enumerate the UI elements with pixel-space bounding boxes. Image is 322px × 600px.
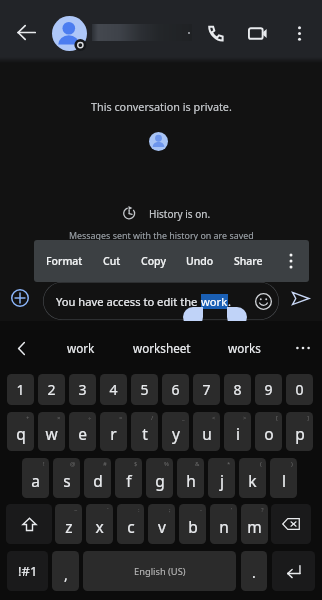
button[interactable]: i xyxy=(224,412,251,451)
staticText: work xyxy=(67,340,95,356)
button[interactable]: Send xyxy=(286,284,315,313)
staticText: 1 xyxy=(16,380,25,399)
staticText: ? xyxy=(261,506,264,514)
button[interactable]: e xyxy=(69,412,96,451)
button[interactable]: 8 xyxy=(224,374,251,405)
button[interactable]: works xyxy=(203,333,285,363)
button[interactable]: p xyxy=(286,412,313,451)
button[interactable]: 5 xyxy=(131,374,158,405)
button[interactable]: You have access to edit the xyxy=(43,282,279,320)
button[interactable]: k xyxy=(239,458,266,498)
button[interactable]: h xyxy=(177,458,204,498)
staticText: x xyxy=(95,516,104,537)
staticText: Copy xyxy=(141,254,166,268)
button[interactable]: More suggestions xyxy=(288,333,318,363)
button[interactable]: a xyxy=(22,458,49,498)
button[interactable]: 6 xyxy=(162,374,189,405)
button[interactable]: d xyxy=(84,458,111,498)
button[interactable]: worksheet xyxy=(121,333,203,363)
button[interactable]: f xyxy=(115,458,142,498)
staticText: 2 xyxy=(47,380,56,399)
button[interactable]: x xyxy=(86,504,113,544)
staticText: w xyxy=(45,423,58,444)
button[interactable]: 0 xyxy=(286,374,313,405)
staticText: r xyxy=(110,423,117,444)
staticText: k xyxy=(248,470,257,491)
button[interactable]: o xyxy=(255,412,282,451)
staticText: Format xyxy=(46,254,83,268)
button[interactable]: 7 xyxy=(193,374,220,405)
button[interactable]: Enter xyxy=(272,551,315,591)
button[interactable]: Share xyxy=(234,240,263,282)
button[interactable]: Cut xyxy=(103,240,121,282)
button[interactable]: Backspace xyxy=(271,504,311,544)
button[interactable]: work xyxy=(40,333,121,363)
button[interactable]: y xyxy=(162,412,189,451)
staticText: < xyxy=(212,414,216,422)
button[interactable]: Shift xyxy=(6,504,52,544)
button[interactable]: More xyxy=(273,240,309,282)
button[interactable]: s xyxy=(53,458,80,498)
button[interactable]: r xyxy=(100,412,127,451)
staticText: ` xyxy=(107,506,109,514)
button[interactable]: More options xyxy=(283,17,316,50)
button[interactable]: Conversation name xyxy=(92,22,192,43)
button[interactable]: z xyxy=(55,504,82,544)
staticText: History is on. xyxy=(149,207,211,221)
button[interactable]: c xyxy=(117,504,144,544)
staticText: d xyxy=(93,470,103,491)
button[interactable]: Back xyxy=(9,15,43,49)
staticText: Undo xyxy=(186,254,214,268)
button[interactable]: 9 xyxy=(255,374,282,405)
button[interactable]: w xyxy=(38,412,65,451)
button[interactable]: v xyxy=(148,504,175,544)
staticText: - xyxy=(200,506,202,514)
button[interactable]: q xyxy=(7,412,34,451)
button[interactable]: g xyxy=(146,458,173,498)
button[interactable]: Copy xyxy=(141,240,166,282)
button[interactable]: Undo xyxy=(186,240,214,282)
button[interactable]: j xyxy=(208,458,235,498)
button[interactable]: Video call xyxy=(240,16,275,51)
button[interactable]: Previous suggestions xyxy=(6,333,36,363)
staticText: e xyxy=(78,423,87,444)
staticText: o xyxy=(264,423,274,444)
button[interactable]: Format xyxy=(46,240,83,282)
staticText: ÷ xyxy=(88,414,92,422)
staticText: Messages sent with the history on are sa… xyxy=(69,229,254,241)
staticText: . xyxy=(228,294,231,309)
button[interactable]: Call xyxy=(198,16,232,50)
button[interactable]: Add attachment xyxy=(7,285,33,311)
staticText: English (US) xyxy=(134,565,186,578)
button[interactable]: t xyxy=(131,412,158,451)
button[interactable]: 3 xyxy=(69,374,96,405)
staticText: Cut xyxy=(103,254,121,268)
staticText: c xyxy=(127,516,135,537)
button[interactable]: n xyxy=(210,504,237,544)
staticText: i xyxy=(236,423,240,444)
staticText: [ xyxy=(276,414,278,422)
button[interactable]: . xyxy=(241,551,267,591)
button[interactable]: Space xyxy=(83,551,236,591)
staticText: a xyxy=(31,470,40,491)
button[interactable]: 2 xyxy=(38,374,65,405)
staticText: ] xyxy=(307,414,309,422)
staticText: You have access to edit the xyxy=(56,294,201,309)
button[interactable]: 1 xyxy=(7,374,34,405)
staticText: 3 xyxy=(78,380,87,399)
staticText: !#1 xyxy=(18,562,38,580)
button[interactable]: , xyxy=(52,551,79,591)
staticText: ( xyxy=(260,460,262,468)
button[interactable]: u xyxy=(193,412,220,451)
button[interactable]: Emoji xyxy=(252,290,274,312)
button[interactable]: 4 xyxy=(100,374,127,405)
staticText: ! xyxy=(43,460,45,468)
staticText: work xyxy=(201,294,228,309)
button[interactable]: l xyxy=(270,458,297,498)
button[interactable]: !#1 xyxy=(7,551,48,591)
button[interactable]: m xyxy=(241,504,268,544)
staticText: # xyxy=(103,460,107,468)
button[interactable]: b xyxy=(179,504,206,544)
staticText: ~ xyxy=(74,506,78,514)
button[interactable]: Contact avatar xyxy=(52,16,87,51)
